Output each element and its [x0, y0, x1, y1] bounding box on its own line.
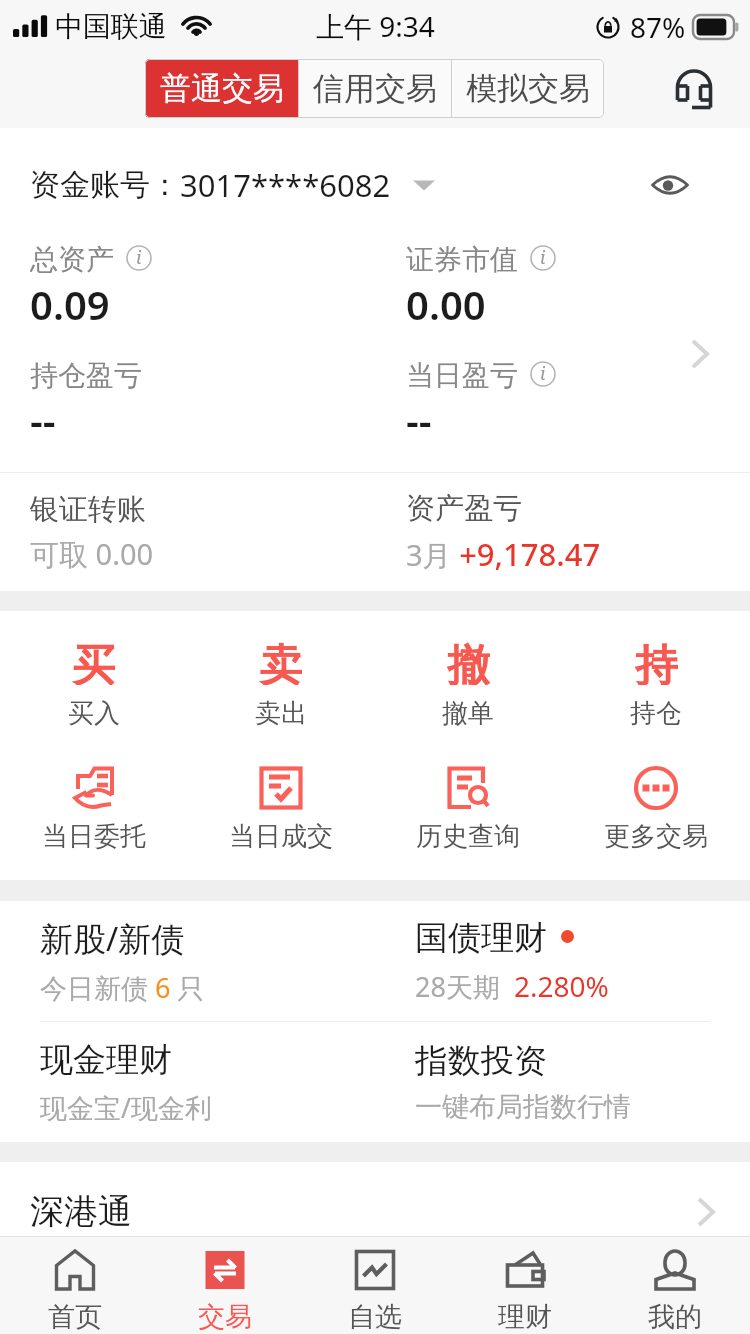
staticText: 自选 — [348, 1300, 402, 1334]
button[interactable]: 交易 — [150, 1237, 300, 1334]
staticText: 3月 +9,178.47 — [406, 533, 601, 575]
staticText: 首页 — [48, 1300, 102, 1334]
staticText: 证券市值 — [406, 242, 518, 274]
staticText: 资金账号： — [30, 166, 180, 204]
button[interactable]: 信用交易 — [299, 59, 451, 118]
button[interactable]: 银证转账 — [30, 473, 406, 591]
staticText: i — [540, 361, 546, 386]
button[interactable]: 当日成交 — [187, 764, 374, 853]
button[interactable]: 普通交易 — [145, 59, 298, 118]
staticText: 买入 — [68, 697, 120, 730]
button[interactable]: 我的 — [600, 1237, 750, 1334]
button[interactable]: 客服 — [656, 53, 732, 128]
staticText: 现金宝/现金利 — [40, 1089, 213, 1126]
button[interactable]: 撤 — [374, 639, 562, 730]
staticText: 持仓盈亏 — [30, 358, 142, 390]
staticText: 现金理财 — [40, 1039, 172, 1081]
staticText: 撤 — [447, 639, 490, 685]
staticText: 0.00 — [406, 277, 486, 329]
staticText: 持仓 — [630, 697, 682, 730]
staticText: 卖 — [259, 639, 302, 685]
staticText: 卖出 — [255, 697, 307, 730]
staticText: 普通交易 — [160, 69, 284, 108]
button[interactable]: 更多交易 — [562, 764, 750, 853]
staticText: 更多交易 — [604, 820, 708, 853]
staticText: 3017****6082 — [180, 164, 391, 206]
staticText: 买 — [72, 639, 115, 685]
button[interactable]: 指数投资 — [415, 1022, 750, 1142]
button[interactable]: 理财 — [450, 1237, 600, 1334]
staticText: i — [136, 245, 142, 270]
staticText: i — [540, 245, 546, 270]
staticText: 银证转账 — [30, 491, 146, 528]
staticText: 中国联通 — [55, 9, 167, 44]
button[interactable]: 新股/新债 — [40, 901, 375, 1021]
button[interactable]: 首页 — [0, 1237, 150, 1334]
staticText: 新股/新债 — [40, 916, 185, 961]
button[interactable]: 模拟交易 — [452, 59, 604, 118]
staticText: 当日委托 — [42, 820, 146, 853]
staticText: 87% — [630, 8, 686, 46]
staticText: 历史查询 — [416, 820, 520, 853]
button[interactable]: 自选 — [300, 1237, 450, 1334]
staticText: 总资产 — [30, 242, 114, 274]
button[interactable]: 资金账号： — [30, 145, 724, 225]
staticText: 国债理财 — [415, 917, 547, 959]
staticText: -- — [406, 393, 432, 445]
staticText: 资产盈亏 — [406, 490, 522, 527]
button[interactable]: 卖 — [187, 639, 374, 730]
button[interactable]: 国债理财 — [415, 901, 750, 1021]
button[interactable]: 现金理财 — [40, 1022, 375, 1142]
button[interactable]: 深港通 — [30, 1162, 722, 1236]
button[interactable]: 历史查询 — [374, 764, 562, 853]
staticText: 0.09 — [30, 277, 110, 329]
button[interactable]: 买 — [0, 639, 187, 730]
staticText: 上午 9:34 — [316, 7, 435, 45]
staticText: 持 — [635, 639, 678, 685]
staticText: 一键布局指数行情 — [415, 1090, 631, 1124]
staticText: 当日盈亏 — [406, 358, 518, 390]
staticText: 信用交易 — [313, 69, 437, 108]
staticText: 今日新债 6 只 — [40, 969, 205, 1006]
button[interactable]: 持 — [562, 639, 750, 730]
staticText: 理财 — [498, 1300, 552, 1334]
staticText: 撤单 — [442, 697, 494, 730]
staticText: 28天期 2.280% — [415, 967, 609, 1005]
staticText: 模拟交易 — [466, 69, 590, 108]
staticText: -- — [30, 393, 56, 445]
staticText: 交易 — [198, 1300, 252, 1334]
staticText: 可取 0.00 — [30, 534, 154, 574]
button[interactable]: 显示金额 — [642, 157, 698, 213]
staticText: 我的 — [648, 1300, 702, 1334]
staticText: 指数投资 — [415, 1040, 547, 1082]
button[interactable]: 当日委托 — [0, 764, 187, 853]
staticText: 深港通 — [30, 1190, 132, 1233]
button[interactable]: 资产盈亏 — [406, 473, 750, 591]
staticText: 当日成交 — [229, 820, 333, 853]
